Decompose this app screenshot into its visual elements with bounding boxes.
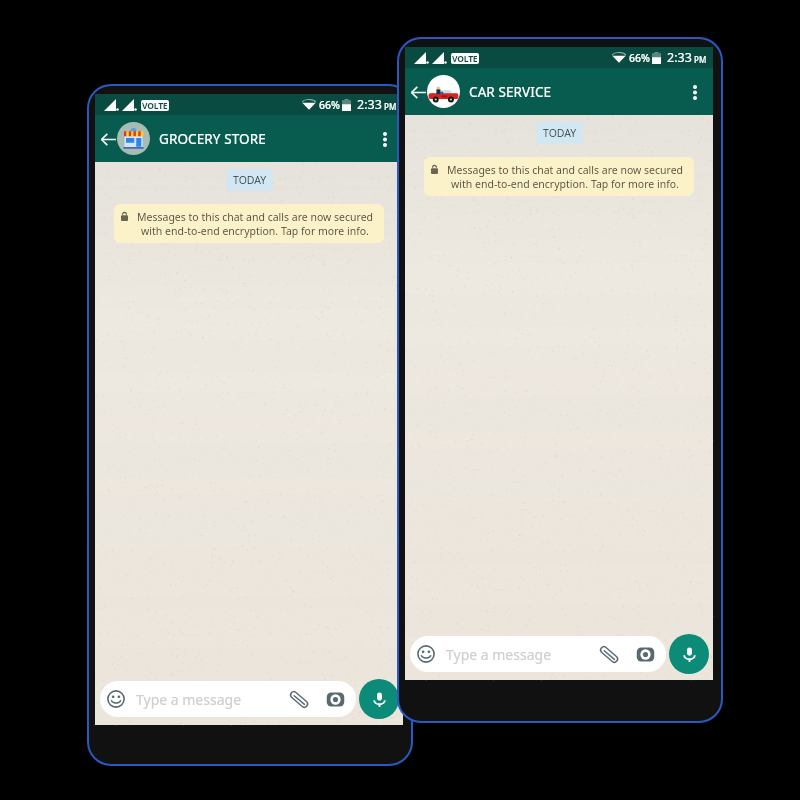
staticText: 2:33 <box>357 96 382 113</box>
staticText: GROCERY STORE <box>159 130 266 148</box>
staticText: TODAY <box>233 173 267 187</box>
staticText: PM <box>384 101 397 112</box>
button[interactable]: Messages to this chat and calls are now … <box>114 204 384 243</box>
button[interactable]: Type a message <box>410 636 666 672</box>
button[interactable]: Profile photo <box>427 75 460 108</box>
staticText: CAR SERVICE <box>469 83 552 101</box>
button[interactable]: TODAY <box>226 169 273 191</box>
staticText: Type a message <box>446 645 552 664</box>
button[interactable]: More options <box>367 122 403 156</box>
staticText: Type a message <box>136 690 242 709</box>
staticText: VOLTE <box>142 100 168 111</box>
button[interactable]: TODAY <box>536 122 583 144</box>
staticText: Messages to this chat and calls are now … <box>443 163 687 191</box>
button[interactable]: Attach file <box>600 645 619 664</box>
button[interactable]: Record voice message <box>669 634 709 674</box>
button[interactable]: Type a message <box>100 681 356 717</box>
button[interactable]: Back <box>407 75 427 109</box>
button[interactable]: More options <box>677 75 713 109</box>
button[interactable]: Back <box>97 122 117 156</box>
staticText: TODAY <box>543 126 577 140</box>
staticText: VOLTE <box>452 53 478 64</box>
button[interactable]: Messages to this chat and calls are now … <box>424 157 694 196</box>
staticText: Messages to this chat and calls are now … <box>133 210 377 238</box>
button[interactable]: Camera <box>325 689 345 709</box>
staticText: 66% <box>319 98 340 112</box>
button[interactable]: Attach file <box>290 690 309 709</box>
staticText: 66% <box>629 51 650 65</box>
staticText: PM <box>694 54 707 65</box>
button[interactable]: Camera <box>635 644 655 664</box>
button[interactable]: Record voice message <box>359 679 399 719</box>
button[interactable]: Profile photo <box>117 122 150 155</box>
staticText: 2:33 <box>667 49 692 66</box>
